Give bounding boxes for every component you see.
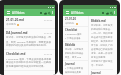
button[interactable]: Open navigation drawer (6, 11, 10, 15)
staticText: 21-01-20.md (6, 18, 24, 22)
staticText: 活，不忘记。 (91, 64, 106, 67)
staticText: * 下周会议准备 (65, 37, 81, 40)
staticText: 而且。明天 Out (65, 56, 82, 59)
button[interactable]: Search (47, 11, 51, 15)
staticText: 日记本，记录每天的想法和心情体会，而 (6, 36, 51, 39)
staticText: 录下来，时间久了就 (91, 44, 113, 47)
staticText: * Checklist 项目 (65, 33, 82, 36)
button[interactable]: 21-01-20.md (4, 16, 55, 28)
staticText: 今日待办 (65, 22, 75, 25)
staticText: 变化，这是一件非常 (91, 52, 113, 55)
staticText: 21-01-20 (65, 17, 76, 21)
staticText: 所有事项都已经完成并记录好结果。 (6, 65, 46, 68)
button[interactable]: Bbbbbb (63, 42, 88, 60)
button[interactable]: DA Journal.md (4, 29, 55, 49)
staticText: 记录是为了更好地生 (91, 60, 113, 63)
staticText: 的想法和心情体会 (65, 52, 84, 55)
staticText: 且。明天 Outline 不是很好，需要更多修改 (6, 40, 53, 43)
button[interactable]: Sync (105, 11, 109, 15)
staticText: DA Journal.md (6, 31, 28, 35)
staticText: 日记本，记录每天 (65, 48, 84, 51)
button[interactable]: Journal.md (4, 71, 55, 75)
staticText: 21-01-18 (44, 32, 53, 35)
staticText: 21-01-15 (44, 53, 53, 56)
staticText: Bbbbbb (65, 43, 76, 47)
staticText: Bbbbb.md (91, 19, 106, 23)
staticText: Journal (65, 62, 75, 66)
button[interactable]: More options (113, 11, 116, 14)
button[interactable]: Filter (39, 11, 43, 15)
staticText: Checklist (65, 28, 78, 32)
button[interactable]: Sync (43, 11, 47, 15)
staticText: All Notes (12, 11, 25, 15)
staticText: 日记本是，记录每天 (91, 24, 113, 27)
staticText: 完善的内容以及补充说明的地方好好。 (6, 44, 49, 47)
button[interactable]: Checklist.md (4, 50, 55, 70)
staticText: Checklist.md (6, 52, 26, 56)
staticText: 会发现自己的成长和 (91, 48, 113, 51)
button[interactable]: Journal (63, 61, 88, 75)
staticText: 建议在工作前和工作后分别检查一次确保 (6, 61, 51, 64)
button[interactable]: Checklist (63, 27, 88, 41)
staticText: 的想法和心情体会。 (91, 28, 113, 31)
staticText: 备的清单以及事 (65, 71, 82, 74)
button[interactable]: Search (109, 11, 113, 15)
staticText: * 下周会议需要准 (65, 67, 83, 70)
staticText: 回忆录。每天坚持记 (91, 40, 113, 43)
staticText: * Checklist 项目 - 下周会议的准备清单事 (6, 57, 52, 60)
button[interactable]: Filter (101, 11, 105, 15)
staticText: 就会成为宝贵的财富 (91, 36, 113, 39)
staticText: 一日一记，日积月累 (91, 32, 113, 35)
staticText: All Notes (71, 11, 84, 15)
staticText: Journal (91, 71, 101, 75)
button[interactable]: 21-01-20 (63, 16, 88, 26)
staticText: 今日待办 (6, 23, 16, 26)
button[interactable]: Open navigation drawer (65, 11, 69, 15)
staticText: 21-01-20 (44, 19, 53, 22)
staticText: 有意义的事情。 (91, 56, 108, 59)
button[interactable]: More options (51, 11, 54, 14)
